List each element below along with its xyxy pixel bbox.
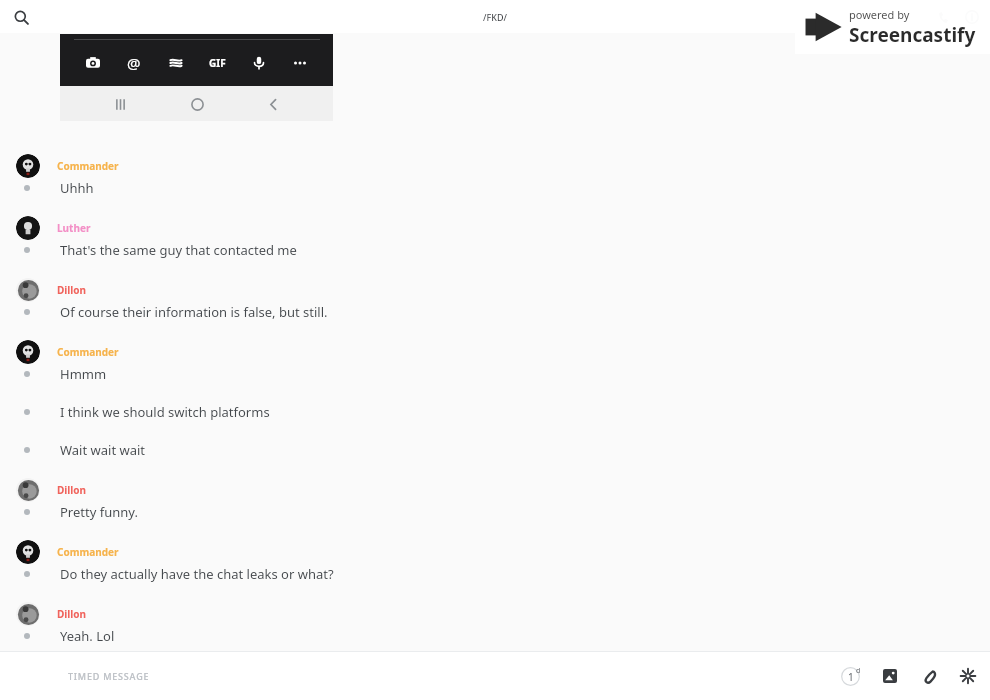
button[interactable]: Stickers bbox=[159, 46, 193, 80]
button[interactable]: Luther bbox=[0, 207, 990, 269]
staticText: TIMED MESSAGE bbox=[68, 670, 150, 682]
staticText: Do they actually have the chat leaks or … bbox=[60, 565, 334, 583]
staticText: Commander bbox=[57, 545, 119, 559]
staticText: @ bbox=[127, 53, 141, 73]
button[interactable]: Voice message bbox=[242, 46, 276, 80]
staticText: Dillon bbox=[57, 483, 87, 497]
button[interactable]: Wait wait wait bbox=[0, 431, 990, 469]
button[interactable]: Dillon bbox=[0, 469, 990, 531]
staticText: Luther bbox=[57, 221, 91, 235]
button[interactable]: More options bbox=[283, 46, 317, 80]
staticText: Uhhh bbox=[60, 179, 94, 197]
staticText: Commander bbox=[57, 159, 119, 173]
button[interactable]: Back bbox=[256, 87, 290, 121]
button[interactable]: Commander bbox=[0, 331, 990, 393]
staticText: Wait wait wait bbox=[60, 441, 146, 459]
button[interactable]: Call bbox=[930, 3, 958, 31]
button[interactable]: Info bbox=[958, 3, 986, 31]
staticText: GIF bbox=[209, 56, 226, 70]
button[interactable]: Commander bbox=[0, 531, 990, 593]
button[interactable]: Effects bbox=[950, 656, 986, 696]
staticText: Commander bbox=[57, 345, 119, 359]
staticText: /FKD/ bbox=[483, 11, 507, 23]
staticText: Screencastify bbox=[849, 22, 976, 48]
staticText: Pretty funny. bbox=[60, 503, 138, 521]
staticText: Of course their information is false, bu… bbox=[60, 303, 328, 321]
button[interactable]: Insert image bbox=[870, 656, 910, 696]
button[interactable]: Dillon bbox=[0, 269, 990, 331]
button[interactable]: Message timer, 1 day bbox=[830, 656, 870, 696]
button[interactable]: Recents bbox=[103, 87, 137, 121]
button[interactable]: GIF bbox=[200, 46, 234, 80]
staticText: d bbox=[856, 666, 861, 676]
button[interactable]: Camera bbox=[76, 46, 110, 80]
staticText: Dillon bbox=[57, 283, 87, 297]
staticText: powered by bbox=[849, 7, 910, 22]
button[interactable]: Home bbox=[180, 87, 214, 121]
button[interactable]: Commander bbox=[0, 145, 990, 207]
button[interactable]: Dillon bbox=[0, 593, 990, 651]
staticText: That's the same guy that contacted me bbox=[60, 241, 297, 259]
button[interactable]: Mention bbox=[117, 46, 151, 80]
button[interactable]: Search bbox=[8, 4, 34, 30]
button[interactable]: I think we should switch platforms bbox=[0, 393, 990, 431]
staticText: Dillon bbox=[57, 607, 87, 621]
button[interactable]: Attach file bbox=[910, 656, 950, 696]
staticText: 1 bbox=[848, 670, 854, 684]
staticText: I think we should switch platforms bbox=[60, 403, 270, 421]
staticText: Hmmm bbox=[60, 365, 107, 383]
staticText: Yeah. Lol bbox=[60, 627, 115, 645]
